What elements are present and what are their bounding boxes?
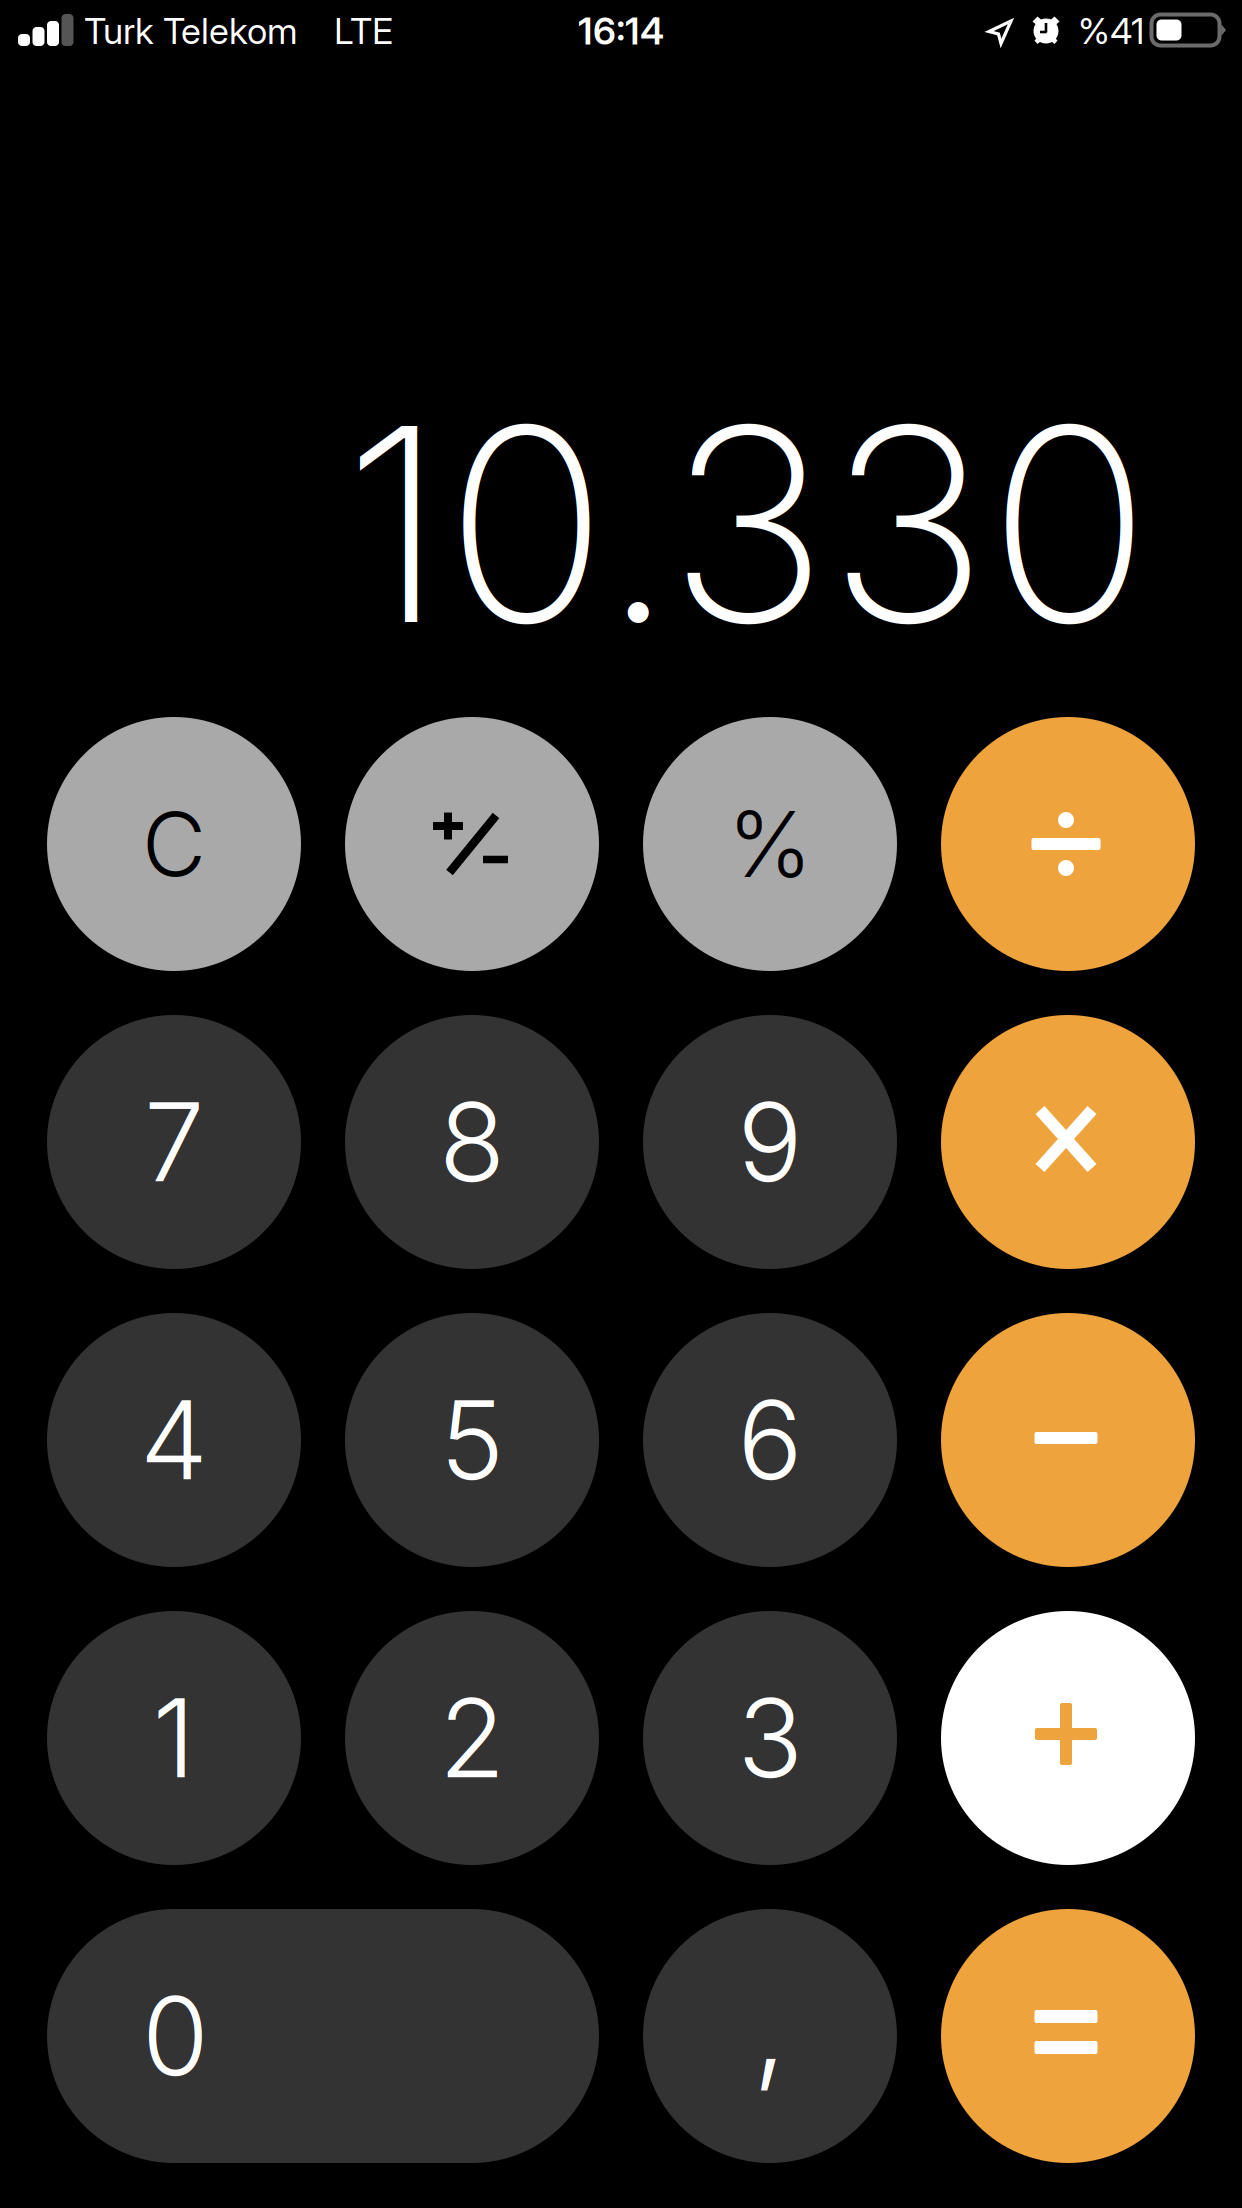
button[interactable]: Minus	[941, 1313, 1195, 1567]
button[interactable]: Divide	[941, 717, 1195, 971]
button[interactable]: 4	[47, 1313, 301, 1567]
button[interactable]: 3	[643, 1611, 897, 1865]
staticText: %41	[1078, 9, 1144, 53]
staticText: Turk Telekom	[84, 9, 298, 53]
staticText: LTE	[334, 9, 393, 53]
staticText: 6	[737, 1375, 802, 1505]
staticText: %	[727, 789, 812, 899]
staticText: 1	[152, 1673, 195, 1803]
button[interactable]: 8	[345, 1015, 599, 1269]
button[interactable]: 7	[47, 1015, 301, 1269]
button[interactable]: Multiply	[941, 1015, 1195, 1269]
button[interactable]: Plus minus	[345, 717, 599, 971]
staticText: 16:14	[578, 8, 664, 54]
button[interactable]: 2	[345, 1611, 599, 1865]
button[interactable]: 9	[643, 1015, 897, 1269]
button[interactable]: 5	[345, 1313, 599, 1567]
staticText: 0	[142, 1971, 209, 2101]
staticText: 3	[737, 1673, 802, 1803]
staticText: 4	[140, 1375, 208, 1505]
button[interactable]: 1	[47, 1611, 301, 1865]
staticText: 10.330	[343, 361, 1151, 687]
staticText: 7	[144, 1077, 204, 1207]
button[interactable]: 6	[643, 1313, 897, 1567]
button[interactable]: ,	[643, 1909, 897, 2163]
staticText: 5	[440, 1375, 504, 1505]
staticText: 8	[439, 1077, 505, 1207]
staticText: ,	[752, 1952, 787, 2100]
button[interactable]: Percent	[643, 717, 897, 971]
button[interactable]: Clear	[47, 717, 301, 971]
button[interactable]: Equals	[941, 1909, 1195, 2163]
button[interactable]: Plus	[941, 1611, 1195, 1865]
button[interactable]: 0	[47, 1909, 599, 2163]
staticText: 2	[439, 1673, 505, 1803]
staticText: 9	[737, 1077, 802, 1207]
staticText: C	[142, 791, 206, 897]
